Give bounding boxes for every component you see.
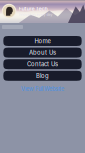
button[interactable]: View Full Website: [21, 82, 64, 92]
staticText: Home: [34, 37, 50, 45]
button[interactable]: About Us: [3, 48, 82, 58]
staticText: View Full Website: [21, 86, 64, 92]
staticText: About Us: [29, 49, 56, 56]
staticText: Innovation every day: [18, 12, 52, 17]
button[interactable]: Home: [3, 36, 82, 46]
button[interactable]: Contact Us: [3, 59, 82, 69]
button[interactable]: Blog: [3, 71, 82, 81]
staticText: Future Tech: [18, 5, 47, 12]
staticText: Contact Us: [27, 61, 58, 68]
staticText: Blog: [36, 72, 49, 79]
